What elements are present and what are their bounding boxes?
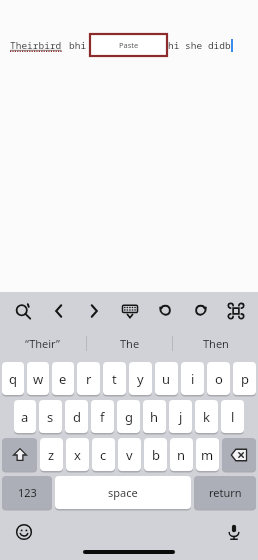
- staticText: k: [203, 408, 210, 426]
- button[interactable]: k: [195, 400, 218, 433]
- button[interactable]: Paste: [90, 34, 167, 56]
- button[interactable]: h: [143, 400, 166, 433]
- staticText: y: [137, 370, 144, 388]
- button[interactable]: o: [207, 362, 230, 395]
- button[interactable]: d: [65, 400, 88, 433]
- button[interactable]: x: [66, 438, 89, 471]
- staticText: l: [231, 408, 235, 426]
- button[interactable]: s: [39, 400, 62, 433]
- button[interactable]: t: [103, 362, 126, 395]
- staticText: v: [126, 446, 133, 464]
- staticText: q: [9, 370, 17, 388]
- button[interactable]: q: [2, 362, 24, 395]
- staticText: c: [100, 446, 107, 464]
- staticText: z: [48, 446, 55, 464]
- button[interactable]: space: [55, 476, 191, 509]
- button[interactable]: return: [194, 476, 256, 509]
- staticText: h: [150, 408, 159, 426]
- staticText: e: [59, 370, 67, 388]
- button[interactable]: Undo: [151, 297, 178, 324]
- button[interactable]: p: [233, 362, 256, 395]
- button[interactable]: The: [87, 328, 172, 358]
- button[interactable]: Next: [80, 297, 107, 324]
- button[interactable]: Dictation: [221, 519, 247, 545]
- button[interactable]: g: [117, 400, 140, 433]
- button[interactable]: l: [221, 400, 244, 433]
- staticText: g: [125, 408, 133, 426]
- staticText: bhi: [69, 39, 87, 52]
- button[interactable]: r: [77, 362, 100, 395]
- button[interactable]: Then: [173, 328, 258, 358]
- button[interactable]: Emoji: [11, 519, 37, 545]
- button[interactable]: 123: [2, 476, 52, 509]
- staticText: Then: [203, 336, 229, 351]
- button[interactable]: Search: [9, 297, 36, 324]
- staticText: hi she didb: [168, 39, 231, 52]
- staticText: s: [47, 408, 54, 426]
- button[interactable]: w: [27, 362, 49, 395]
- staticText: t: [112, 370, 117, 388]
- staticText: return: [209, 485, 242, 500]
- staticText: f: [100, 408, 105, 426]
- button[interactable]: n: [170, 438, 193, 471]
- staticText: j: [179, 408, 183, 426]
- staticText: b: [152, 446, 160, 464]
- staticText: Paste: [119, 40, 139, 50]
- button[interactable]: j: [169, 400, 192, 433]
- button[interactable]: z: [40, 438, 63, 471]
- staticText: a: [21, 408, 29, 426]
- button[interactable]: c: [92, 438, 115, 471]
- button[interactable]: y: [129, 362, 152, 395]
- button[interactable]: Previous: [45, 297, 72, 324]
- staticText: u: [162, 370, 171, 388]
- button[interactable]: i: [181, 362, 204, 395]
- button[interactable]: e: [52, 362, 74, 395]
- button[interactable]: Hide keyboard: [116, 297, 143, 324]
- staticText: The: [120, 336, 140, 351]
- staticText: i: [191, 370, 195, 388]
- staticText: d: [73, 408, 81, 426]
- staticText: r: [86, 370, 92, 388]
- staticText: “Their”: [25, 336, 61, 351]
- button[interactable]: Backspace: [222, 438, 256, 471]
- button[interactable]: Redo: [187, 297, 214, 324]
- staticText: o: [215, 370, 223, 388]
- button[interactable]: v: [118, 438, 141, 471]
- button[interactable]: f: [91, 400, 114, 433]
- button[interactable]: b: [144, 438, 167, 471]
- button[interactable]: “Their”: [0, 328, 86, 358]
- button[interactable]: a: [14, 400, 36, 433]
- staticText: p: [241, 370, 249, 388]
- button[interactable]: Shortcuts: [222, 297, 249, 324]
- button[interactable]: Shift: [2, 438, 37, 471]
- staticText: n: [177, 446, 186, 464]
- staticText: 123: [18, 485, 37, 500]
- staticText: m: [201, 446, 214, 464]
- button[interactable]: m: [196, 438, 219, 471]
- staticText: x: [74, 446, 81, 464]
- staticText: Theirbird: [10, 39, 62, 52]
- staticText: space: [108, 485, 138, 500]
- staticText: w: [33, 370, 44, 388]
- button[interactable]: u: [155, 362, 178, 395]
